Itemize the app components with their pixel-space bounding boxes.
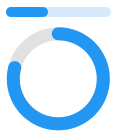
button[interactable]: Progress ring [0, 0, 117, 137]
button[interactable]: Progress bar [6, 7, 111, 17]
